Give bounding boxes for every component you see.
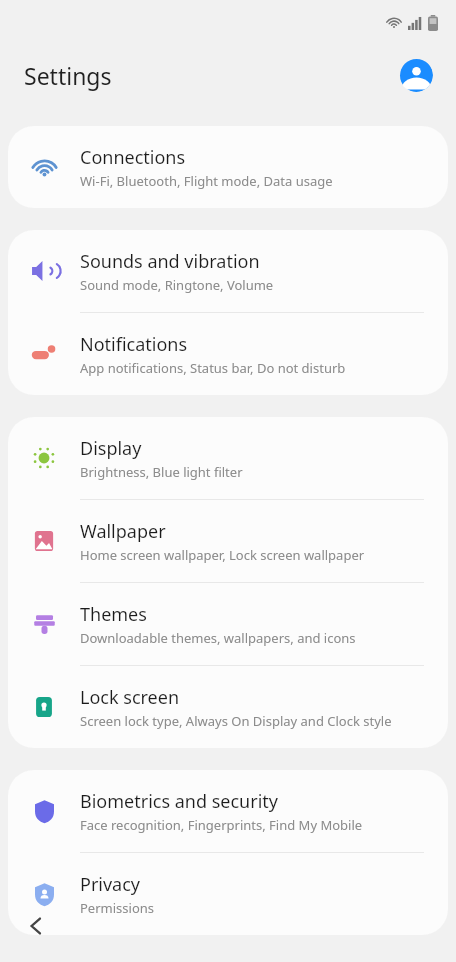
button[interactable]: Lock screen: [8, 666, 448, 748]
button[interactable]: Back: [6, 896, 66, 956]
button[interactable]: Themes: [8, 583, 448, 665]
staticText: Downloadable themes, wallpapers, and ico…: [80, 629, 356, 647]
staticText: Biometrics and security: [80, 789, 278, 814]
staticText: Wi-Fi, Bluetooth, Flight mode, Data usag…: [80, 172, 333, 190]
staticText: Home screen wallpaper, Lock screen wallp…: [80, 546, 365, 564]
staticText: Wallpaper: [80, 519, 166, 544]
staticText: Brightness, Blue light filter: [80, 463, 243, 481]
staticText: Settings: [24, 60, 112, 91]
button[interactable]: Connections: [8, 126, 448, 208]
button[interactable]: Wallpaper: [8, 500, 448, 582]
staticText: Permissions: [80, 899, 155, 917]
staticText: Screen lock type, Always On Display and …: [80, 712, 392, 730]
staticText: Notifications: [80, 332, 188, 357]
button[interactable]: Privacy: [8, 853, 448, 935]
button[interactable]: Notifications: [8, 313, 448, 395]
staticText: Sounds and vibration: [80, 249, 260, 274]
staticText: Connections: [80, 145, 186, 170]
button[interactable]: Biometrics and security: [8, 770, 448, 852]
staticText: Sound mode, Ringtone, Volume: [80, 276, 274, 294]
staticText: Lock screen: [80, 685, 180, 710]
button[interactable]: Account: [399, 58, 433, 92]
staticText: App notifications, Status bar, Do not di…: [80, 359, 346, 377]
button[interactable]: Display: [8, 417, 448, 499]
button[interactable]: Sounds and vibration: [8, 230, 448, 312]
staticText: Display: [80, 436, 142, 461]
staticText: Face recognition, Fingerprints, Find My …: [80, 816, 363, 834]
staticText: Privacy: [80, 872, 141, 897]
staticText: Themes: [80, 602, 147, 627]
